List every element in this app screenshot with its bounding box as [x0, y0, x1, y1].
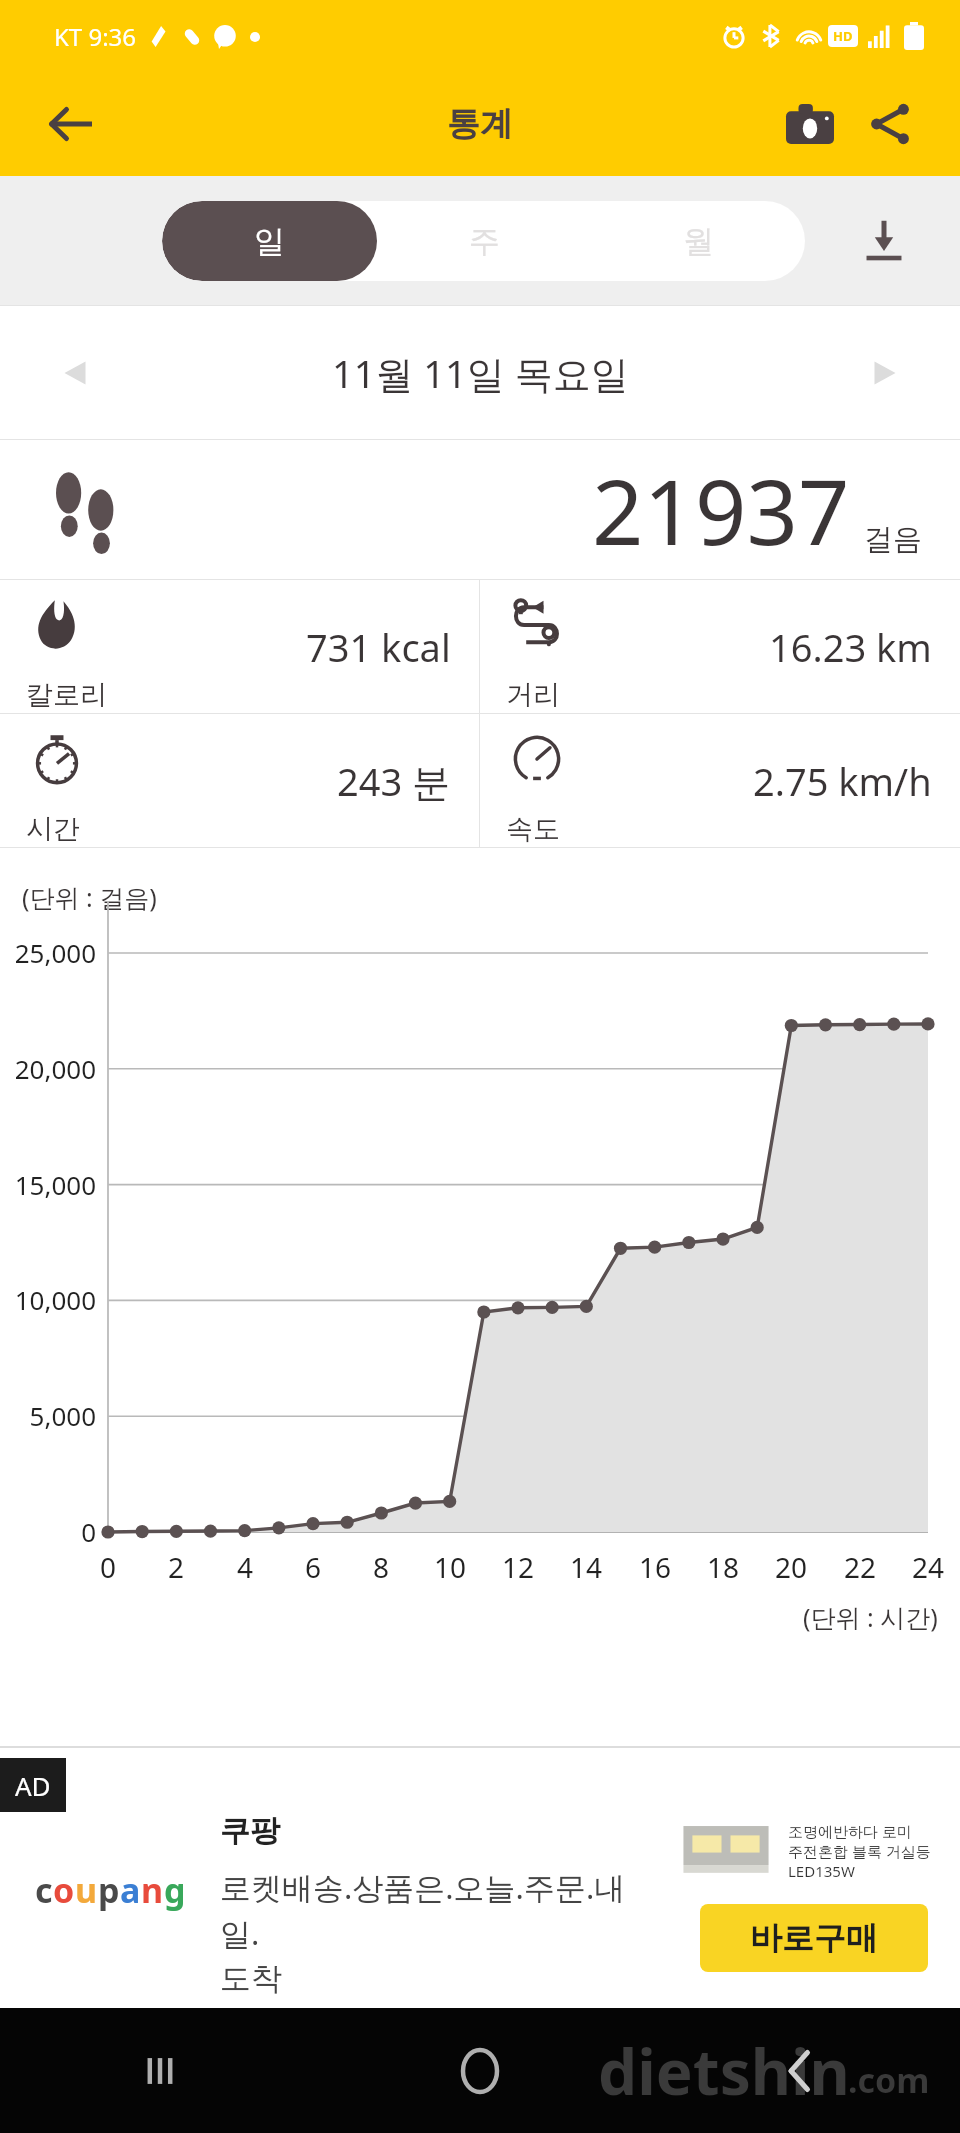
staticText: 주 [469, 222, 500, 261]
button[interactable]: Recents [0, 2008, 320, 2133]
staticText: KT 9:36 [54, 20, 137, 53]
staticText: 731 kcal [306, 621, 451, 673]
staticText: .com [848, 2057, 930, 2103]
staticText: 20 [766, 1548, 816, 1586]
staticText: p [98, 1867, 120, 1913]
staticText: a [120, 1867, 141, 1913]
staticText: 시간 [26, 812, 80, 846]
staticText: 15,000 [0, 1167, 96, 1202]
staticText: 24 [903, 1548, 953, 1586]
button[interactable]: Back [34, 88, 106, 160]
staticText: 14 [561, 1548, 611, 1586]
staticText: 2.75 km/h [753, 755, 932, 807]
staticText: HD [833, 27, 853, 45]
staticText: 월 [683, 222, 714, 261]
staticText: 20,000 [0, 1051, 96, 1086]
button[interactable]: 칼로리 [0, 580, 479, 713]
staticText: 로켓배송.상품은.오늘.주문.내일. 도착 [220, 1866, 640, 1998]
staticText: 걸음 [864, 521, 922, 558]
staticText: 거리 [506, 678, 560, 712]
staticText: 21937 [592, 449, 850, 572]
button[interactable]: Back [640, 2008, 960, 2133]
staticText: 4 [220, 1548, 270, 1586]
staticText: c [35, 1867, 53, 1913]
staticText: 주전혼합 블록 거실등 [788, 1841, 931, 1861]
staticText: 일 [254, 222, 285, 261]
button[interactable]: 시간 [0, 714, 479, 847]
staticText: 16 [630, 1548, 680, 1586]
staticText: 칼로리 [26, 678, 107, 712]
staticText: AD [15, 1768, 51, 1803]
button[interactable]: 주 [377, 201, 591, 281]
staticText: 10,000 [0, 1282, 96, 1317]
button[interactable]: AD [0, 1746, 960, 2008]
button[interactable]: Download [846, 203, 922, 279]
staticText: o [53, 1867, 75, 1913]
staticText: 10 [425, 1548, 475, 1586]
staticText: g [164, 1867, 186, 1913]
staticText: 11월 11일 목요일 [332, 347, 629, 399]
button[interactable]: Share [850, 84, 930, 164]
staticText: 바로구매 [750, 1918, 878, 1958]
staticText: 22 [835, 1548, 885, 1586]
staticText: 2 [151, 1548, 201, 1586]
button[interactable]: 일 [162, 201, 377, 281]
button[interactable]: Home [320, 2008, 640, 2133]
staticText: 쿠팡 [220, 1812, 280, 1850]
staticText: 통계 [447, 103, 513, 145]
staticText: u [75, 1867, 98, 1913]
staticText: 0 [0, 1514, 96, 1549]
button[interactable]: 거리 [480, 580, 960, 713]
button[interactable]: Camera [770, 84, 850, 164]
staticText: 16.23 km [769, 621, 932, 673]
staticText: (단위 : 시간) [803, 1600, 938, 1634]
staticText: 12 [493, 1548, 543, 1586]
button[interactable]: 바로구매 [700, 1904, 928, 1972]
staticText: dietshin [598, 2029, 850, 2113]
staticText: LED135W [788, 1861, 855, 1881]
staticText: 18 [698, 1548, 748, 1586]
staticText: 조명에반하다 로미 [788, 1821, 912, 1841]
staticText: 6 [288, 1548, 338, 1586]
button[interactable]: 월 [591, 201, 805, 281]
staticText: n [141, 1867, 164, 1913]
staticText: 25,000 [0, 935, 96, 970]
staticText: (단위 : 걸음) [22, 880, 157, 914]
staticText: 8 [356, 1548, 406, 1586]
staticText: 5,000 [0, 1398, 96, 1433]
button[interactable]: 속도 [480, 714, 960, 847]
staticText: 속도 [506, 812, 560, 846]
staticText: 243 분 [337, 755, 451, 807]
button[interactable]: Next day [850, 338, 920, 408]
button[interactable]: Previous day [40, 338, 110, 408]
staticText: 0 [83, 1548, 133, 1586]
